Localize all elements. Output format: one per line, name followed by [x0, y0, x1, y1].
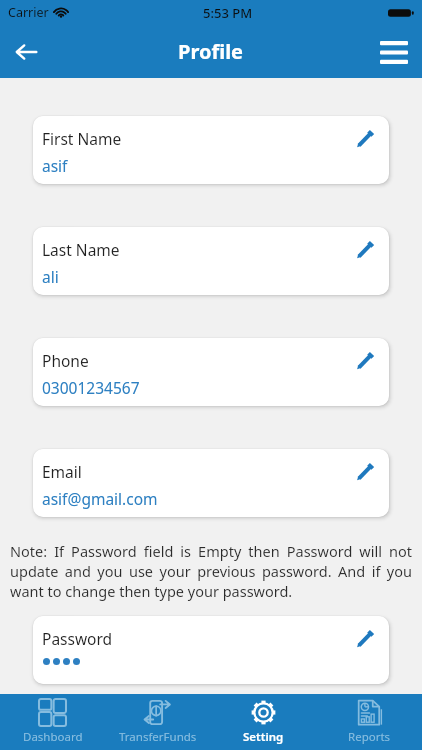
button[interactable]: Reports [316, 694, 422, 750]
staticText: Reports [348, 729, 391, 745]
button[interactable]: Edit Email [347, 453, 383, 489]
staticText: Email [42, 461, 82, 482]
button[interactable]: First Name [33, 116, 389, 184]
button[interactable]: Phone [33, 338, 389, 406]
button[interactable]: Edit Password [347, 620, 383, 656]
button[interactable]: Email [33, 449, 389, 517]
button[interactable]: Menu [372, 30, 416, 74]
staticText: Dashboard [23, 729, 83, 745]
staticText: Note: If Password field is Empty then Pa… [10, 541, 412, 601]
staticText: Profile [178, 38, 244, 65]
staticText: Password [42, 628, 113, 649]
button[interactable]: Edit First Name [347, 120, 383, 156]
button[interactable]: Back [4, 30, 48, 74]
button[interactable]: Setting [210, 694, 316, 750]
staticText: asif [42, 155, 68, 176]
staticText: 03001234567 [42, 377, 140, 398]
staticText: asif@gmail.com [42, 488, 158, 509]
staticText: TransferFunds [119, 729, 197, 745]
staticText: 5:53 PM [203, 4, 253, 22]
staticText: Carrier [8, 4, 49, 21]
button[interactable]: Edit Phone [347, 342, 383, 378]
button[interactable]: Edit Last Name [347, 231, 383, 267]
staticText: Setting [243, 729, 284, 745]
staticText: Phone [42, 350, 89, 371]
button[interactable]: TransferFunds [105, 694, 210, 750]
staticText: First Name [42, 128, 122, 149]
button[interactable]: Password [33, 616, 389, 684]
button[interactable]: Last Name [33, 227, 389, 295]
button[interactable]: Dashboard [0, 694, 105, 750]
staticText: Last Name [42, 239, 120, 260]
staticText: ali [42, 266, 59, 287]
